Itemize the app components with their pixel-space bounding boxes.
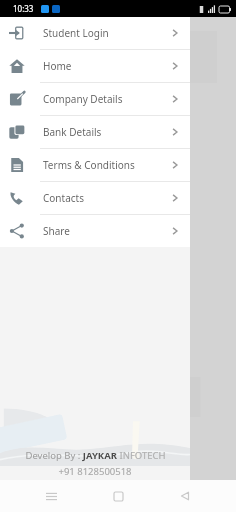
button[interactable]: Recent apps [35, 480, 67, 512]
staticText: +91 8128500518 [58, 465, 132, 478]
button[interactable]: Terms & Conditions [0, 149, 190, 181]
staticText: Bank Details [43, 125, 102, 139]
staticText: Share [43, 224, 70, 238]
staticText: Terms & Conditions [43, 158, 135, 172]
button[interactable]: Share [0, 215, 190, 247]
staticText: Contacts [43, 191, 84, 205]
button[interactable]: Bank Details [0, 116, 190, 148]
button[interactable]: Company Details [0, 83, 190, 115]
staticText: Student Login [43, 26, 109, 40]
button[interactable]: Student Login [0, 17, 190, 49]
button[interactable]: Home [0, 50, 190, 82]
button[interactable]: Back [169, 480, 201, 512]
staticText: Home [43, 59, 72, 73]
button[interactable]: Contacts [0, 182, 190, 214]
staticText: Company Details [43, 92, 123, 106]
staticText: Develop By : JAYKAR INFOTECH [25, 449, 166, 462]
staticText: 10:33 [13, 3, 34, 14]
button[interactable]: Home [102, 480, 134, 512]
